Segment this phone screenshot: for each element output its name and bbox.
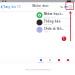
staticText: Nhóm chat bbox=[32, 4, 48, 8]
button[interactable]: Gọi thoại bbox=[60, 5, 63, 8]
button[interactable]: Danh bạ bbox=[45, 58, 54, 64]
staticText: Trang chủ (1) bbox=[3, 5, 21, 9]
button[interactable]: Cá nhân bbox=[63, 58, 72, 64]
staticText: Nhóm học tập bbox=[44, 12, 64, 16]
button[interactable]: Gọi video bbox=[64, 5, 68, 8]
button[interactable]: Chưa có tên nhóm bbox=[0, 26, 75, 33]
staticText: Thông báo bbox=[44, 20, 61, 23]
button[interactable]: Khám phá bbox=[54, 58, 63, 64]
staticText: 12 thành viên bbox=[36, 8, 45, 10]
button[interactable]: Tùy chọn nhóm bbox=[69, 5, 72, 8]
staticText: Bạn: Chào cả nhà bbox=[44, 16, 56, 18]
staticText: Hướng dẫn tạo nhóm chat trên điện thoại bbox=[24, 69, 50, 71]
staticText: Khám phá bbox=[55, 62, 62, 63]
staticText: Hôm qua bbox=[44, 31, 50, 33]
button[interactable]: Nhóm học tập bbox=[0, 12, 75, 19]
button[interactable]: Tin nhắn bbox=[36, 58, 45, 64]
button[interactable]: Thông báo bbox=[0, 19, 75, 26]
staticText: 1 bbox=[63, 37, 65, 40]
staticText: Chưa có tên nhóm bbox=[44, 27, 64, 30]
staticText: Tin nhắn bbox=[38, 62, 44, 63]
button[interactable]: Trang chủ (1) bbox=[0, 3, 21, 10]
staticText: Tin nhắn mới bbox=[44, 23, 52, 25]
